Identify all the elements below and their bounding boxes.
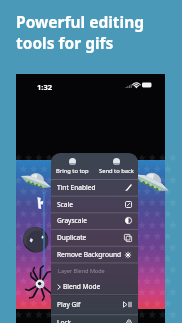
- other: Play Gif: [123, 301, 132, 308]
- other: Grayscale: [125, 217, 132, 224]
- staticText: Layer Blend Mode: [58, 267, 105, 274]
- staticText: Duplicate: [57, 233, 87, 242]
- button[interactable]: Duplicate: [51, 229, 138, 246]
- staticText: Grayscale: [57, 216, 87, 225]
- staticText: Lock: [57, 318, 72, 323]
- staticText: Blend Mode: [63, 282, 101, 291]
- staticText: Send to back: [99, 167, 134, 175]
- other: Tint: [125, 184, 132, 191]
- button[interactable]: Play Gif: [51, 296, 138, 313]
- other: Remove Background: [124, 251, 132, 259]
- button[interactable]: Send to back: [94, 153, 138, 179]
- staticText: Play Gif: [57, 300, 81, 309]
- staticText: Tint Enabled: [57, 183, 96, 192]
- staticText: Bring to top: [56, 167, 89, 175]
- staticText: Remove Background: [57, 250, 122, 259]
- staticText: 1:32: [37, 82, 52, 92]
- button[interactable]: Tint Enabled: [51, 179, 138, 196]
- button[interactable]: Blend Mode: [51, 278, 138, 295]
- button[interactable]: Bring to top: [51, 153, 94, 179]
- other: Duplicate: [124, 234, 132, 242]
- button[interactable]: Grayscale: [51, 212, 138, 229]
- other: Scale: [125, 201, 132, 208]
- other: Lock: [126, 319, 132, 323]
- staticText: Scale: [57, 200, 73, 209]
- button[interactable]: Remove Background: [51, 246, 138, 263]
- button[interactable]: Lock: [51, 314, 138, 323]
- button[interactable]: Scale: [51, 196, 138, 213]
- staticText: tools for gifs: [16, 32, 114, 53]
- staticText: Powerful editing: [16, 11, 145, 32]
